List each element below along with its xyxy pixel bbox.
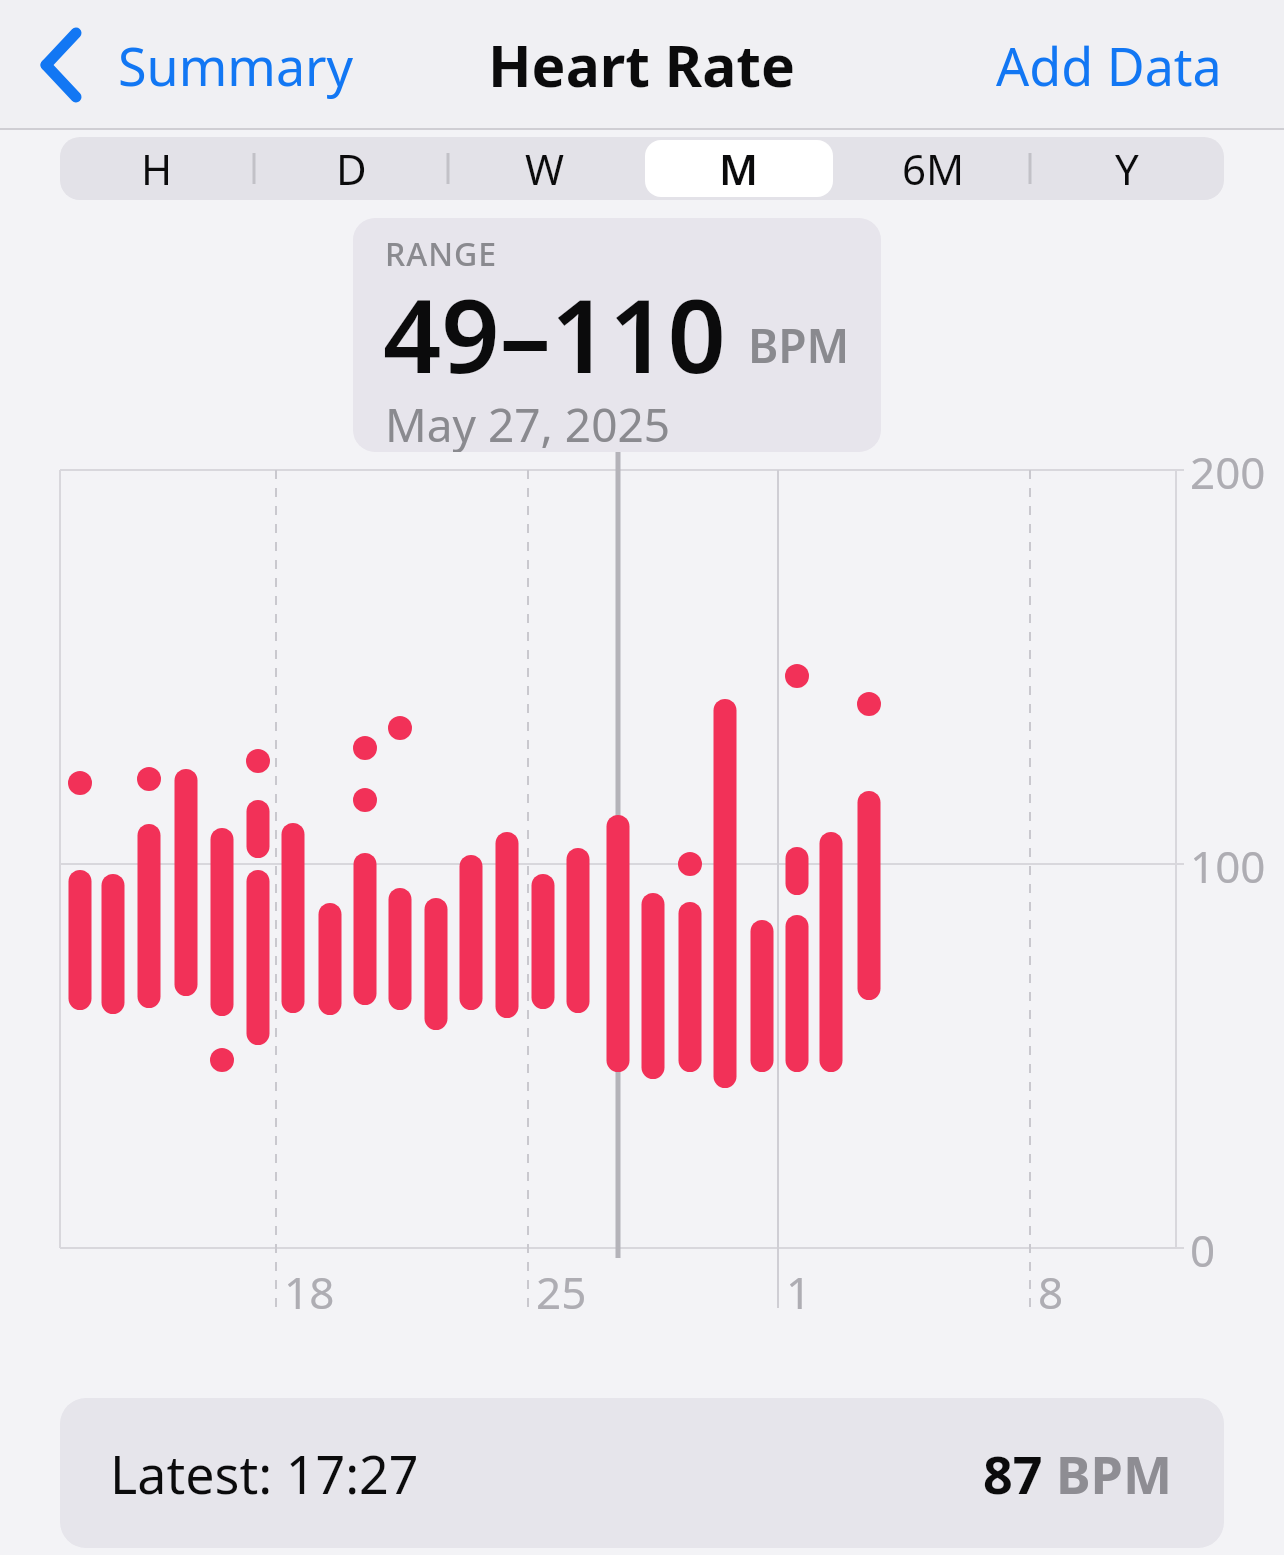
staticText: 49–110 <box>383 264 726 403</box>
button[interactable]: Y <box>1030 137 1224 200</box>
staticText: M <box>719 140 759 197</box>
staticText: Summary <box>118 30 354 101</box>
staticText: 0 <box>1190 1220 1216 1280</box>
button[interactable]: H <box>60 137 254 200</box>
staticText: 8 <box>1038 1262 1064 1322</box>
staticText: Add Data <box>996 30 1222 101</box>
staticText: Latest: 17:27 <box>110 1438 419 1509</box>
staticText: Heart Rate <box>488 26 796 104</box>
staticText: 18 <box>284 1262 335 1322</box>
staticText: May 27, 2025 <box>385 393 671 452</box>
staticText: 100 <box>1190 836 1266 896</box>
staticText: BPM <box>748 314 850 377</box>
button[interactable]: Add Data <box>996 30 1222 101</box>
staticText: RANGE <box>385 232 498 276</box>
staticText: 87 BPM <box>983 1438 1172 1509</box>
button[interactable]: D <box>254 137 448 200</box>
button[interactable]: 6M <box>836 137 1030 200</box>
staticText: 1 <box>786 1262 812 1322</box>
button[interactable]: Latest: 17:27 <box>60 1398 1224 1548</box>
staticText: 200 <box>1190 442 1266 502</box>
staticText: D <box>336 140 367 197</box>
button[interactable]: Summary <box>38 27 354 103</box>
button[interactable]: M <box>642 137 836 200</box>
staticText: 6M <box>902 140 965 197</box>
staticText: 25 <box>536 1262 587 1322</box>
staticText: H <box>141 140 173 197</box>
staticText: Y <box>1115 140 1139 197</box>
button[interactable]: W <box>448 137 642 200</box>
staticText: W <box>525 140 565 197</box>
